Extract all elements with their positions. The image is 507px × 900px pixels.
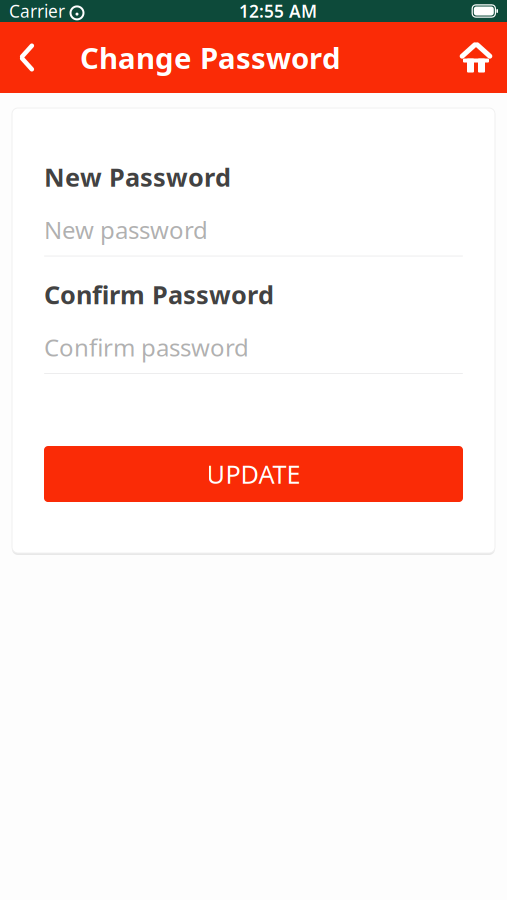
button[interactable]: UPDATE [44,446,463,502]
staticText: Confirm Password [44,277,274,311]
staticText: New password [44,214,208,245]
staticText: Carrier [9,0,65,22]
button[interactable]: Home [445,22,507,93]
staticText: 12:55 AM [239,0,317,22]
staticText: New Password [44,160,231,194]
staticText: Confirm password [44,331,249,363]
staticText: UPDATE [206,457,300,491]
staticText: Change Password [80,38,341,77]
button[interactable]: Back [0,22,54,93]
